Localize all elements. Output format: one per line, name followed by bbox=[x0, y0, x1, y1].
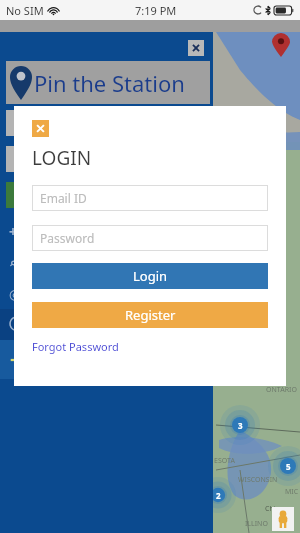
button[interactable]: ⌕ bbox=[0, 247, 213, 278]
staticText: Email ID bbox=[40, 190, 87, 206]
staticText: ⌕ bbox=[9, 255, 18, 271]
staticText: 5 bbox=[286, 461, 291, 472]
staticText: Search bbox=[26, 253, 77, 272]
staticText: Register bbox=[125, 306, 176, 324]
staticText: Password bbox=[40, 230, 95, 246]
button[interactable]: Close login dialog bbox=[32, 120, 49, 137]
staticText: About Us bbox=[31, 315, 99, 334]
button[interactable]: Login bbox=[32, 263, 268, 289]
button[interactable]: Password bbox=[32, 225, 268, 251]
button[interactable]: Email ID bbox=[32, 185, 268, 211]
button[interactable] bbox=[6, 110, 206, 136]
staticText: 7:19 PM bbox=[135, 3, 177, 18]
staticText: ONTARIO bbox=[266, 385, 297, 395]
button[interactable]: Register bbox=[32, 302, 268, 328]
staticText: 2 bbox=[216, 490, 221, 501]
button[interactable] bbox=[6, 146, 206, 172]
button[interactable]: Street View pegman bbox=[272, 507, 294, 531]
button[interactable]: Close menu bbox=[188, 40, 204, 56]
staticText: Login/Join bbox=[32, 350, 123, 370]
staticText: ⓘ bbox=[9, 316, 23, 334]
staticText: ESOTA bbox=[214, 456, 235, 466]
staticText: Pin the Station bbox=[34, 68, 185, 98]
button[interactable]: ◎ bbox=[0, 278, 213, 309]
staticText: + bbox=[9, 222, 18, 241]
staticText: Login bbox=[133, 267, 168, 285]
staticText: LOGIN bbox=[32, 145, 92, 171]
staticText: 3 bbox=[238, 420, 243, 431]
button[interactable]: Login/Join bbox=[0, 340, 213, 379]
button[interactable]: + bbox=[0, 216, 213, 247]
staticText: WISCONSIN bbox=[238, 475, 278, 485]
staticText: MIC bbox=[285, 487, 299, 497]
staticText: Chicago bbox=[265, 504, 292, 514]
staticText: Forgot Password bbox=[32, 339, 119, 354]
button[interactable] bbox=[6, 182, 206, 208]
button[interactable]: Forgot Password bbox=[32, 339, 119, 354]
staticText: Near Me bbox=[30, 284, 89, 303]
button[interactable]: ⓘ bbox=[0, 309, 213, 340]
staticText: Add Station bbox=[26, 222, 119, 241]
staticText: ◎ bbox=[9, 286, 22, 302]
staticText: ILLINO bbox=[245, 519, 268, 529]
staticText: No SIM bbox=[6, 3, 44, 18]
